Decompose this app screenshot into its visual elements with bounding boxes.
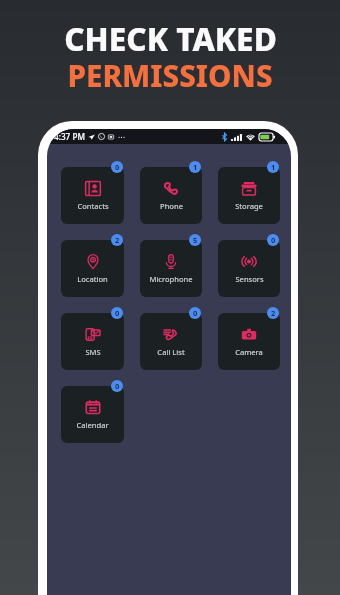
staticText: 5 — [193, 235, 198, 245]
staticText: Phone — [160, 201, 183, 211]
staticText: Call List — [157, 347, 185, 357]
staticText: CHECK TAKED — [64, 17, 277, 60]
staticText: 1 — [193, 162, 198, 172]
staticText: Microphone — [149, 274, 193, 284]
staticText: Location — [77, 274, 108, 284]
button[interactable]: Camera — [218, 313, 280, 370]
staticText: Storage — [235, 201, 263, 211]
staticText: 0 — [115, 162, 120, 172]
staticText: 2 — [115, 235, 120, 245]
staticText: 0 — [193, 308, 198, 318]
staticText: Sensors — [235, 274, 264, 284]
staticText: 1 — [271, 162, 276, 172]
button[interactable]: Phone — [140, 167, 202, 224]
staticText: 0 — [115, 308, 120, 318]
button[interactable]: Contacts — [61, 167, 124, 224]
staticText: 4:37 PM — [54, 131, 85, 142]
staticText: Camera — [235, 347, 263, 357]
staticText: PERMISSIONS — [67, 55, 273, 95]
staticText: 0 — [115, 381, 120, 391]
staticText: Calendar — [76, 420, 109, 430]
staticText: Contacts — [77, 201, 109, 211]
button[interactable]: Call List — [140, 313, 202, 370]
button[interactable]: Sensors — [218, 240, 280, 297]
staticText: 2 — [271, 308, 276, 318]
staticText: SMS — [85, 347, 101, 357]
button[interactable]: Location — [61, 240, 124, 297]
button[interactable]: Storage — [218, 167, 280, 224]
staticText: 0 — [271, 235, 276, 245]
button[interactable]: Microphone — [140, 240, 202, 297]
button[interactable]: SMS — [61, 313, 124, 370]
button[interactable]: Calendar — [61, 386, 124, 443]
